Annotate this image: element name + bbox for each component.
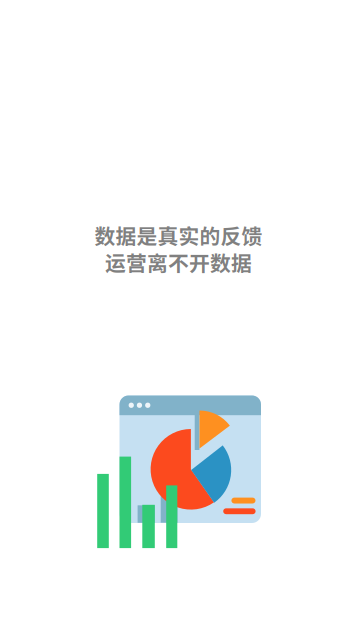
staticText: 运营离不开数据 bbox=[105, 247, 252, 277]
staticText: 数据是真实的反馈 bbox=[94, 220, 262, 250]
